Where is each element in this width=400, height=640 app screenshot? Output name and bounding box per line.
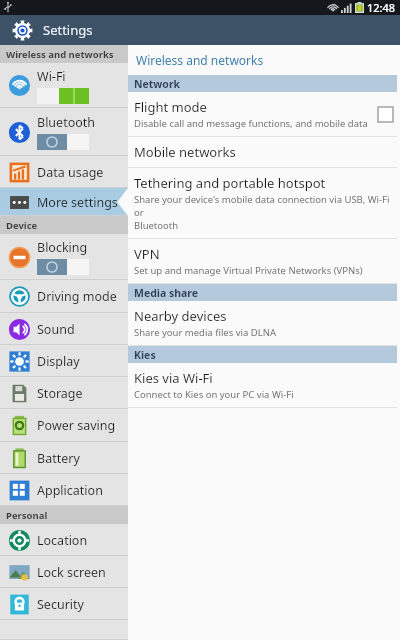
staticText: VPN — [134, 245, 160, 263]
staticText: Data usage — [37, 164, 104, 181]
staticText: Location servic — [37, 532, 124, 549]
button[interactable]: Application ma — [0, 474, 128, 506]
button[interactable]: Tethering and portable hotspot — [128, 168, 400, 239]
button[interactable]: Power saving m — [0, 409, 128, 442]
button[interactable]: Display — [0, 345, 128, 377]
staticText: Device — [6, 219, 38, 232]
staticText: Share your media files via DLNA — [134, 326, 276, 339]
button[interactable]: Location servic — [0, 524, 128, 556]
staticText: Power saving m — [37, 417, 124, 434]
button[interactable]: VPN — [128, 239, 400, 284]
staticText: More settings — [37, 194, 118, 211]
button[interactable]: Flight mode checkbox — [376, 105, 394, 123]
staticText: Kies — [134, 348, 156, 362]
button[interactable]: Bluetooth — [0, 108, 128, 156]
button[interactable]: Security — [0, 588, 128, 620]
staticText: Application ma — [37, 482, 124, 499]
button[interactable]: Storage — [0, 377, 128, 409]
button[interactable]: Driving mode — [0, 280, 128, 313]
staticText: Connect to Kies on your PC via Wi-Fi — [134, 388, 294, 401]
staticText: Kies via Wi-Fi — [134, 369, 213, 387]
button[interactable]: Flight mode — [128, 92, 400, 137]
button[interactable]: More settings — [0, 188, 128, 216]
staticText: Share your device's mobile data connecti… — [134, 193, 394, 232]
button[interactable]: Mobile networks — [128, 137, 400, 168]
staticText: Wireless and networks — [136, 52, 264, 68]
button[interactable]: Settings — [11, 19, 33, 41]
staticText: Driving mode — [37, 288, 117, 305]
button[interactable]: Sound — [0, 313, 128, 345]
button[interactable]: Kies via Wi-Fi — [128, 363, 400, 408]
button[interactable]: Battery — [0, 442, 128, 474]
staticText: Bluetooth — [37, 114, 96, 131]
staticText: Tethering and portable hotspot — [134, 174, 326, 192]
staticText: Storage — [37, 385, 83, 402]
staticText: Display — [37, 353, 80, 370]
button[interactable]: Blocking mode — [0, 234, 128, 280]
button[interactable]: Lock screen — [0, 556, 128, 588]
staticText: Media share — [134, 286, 199, 300]
button[interactable] — [0, 620, 128, 640]
staticText: Mobile networks — [134, 143, 236, 161]
staticText: 12:48 — [367, 0, 396, 15]
staticText: Network — [134, 77, 181, 91]
staticText: Disable call and message functions, and … — [134, 117, 368, 130]
staticText: Personal — [6, 509, 48, 522]
button[interactable]: Nearby devices — [128, 301, 400, 346]
staticText: Set up and manage Virtual Private Networ… — [134, 264, 363, 277]
staticText: Lock screen — [37, 564, 106, 581]
staticText: Battery — [37, 450, 80, 467]
button[interactable]: Data usage — [0, 156, 128, 188]
staticText: Sound — [37, 321, 75, 338]
staticText: Nearby devices — [134, 307, 227, 325]
staticText: Blocking mode — [37, 239, 124, 256]
staticText: Flight mode — [134, 98, 207, 116]
staticText: Wi-Fi — [37, 68, 66, 85]
staticText: Security — [37, 596, 84, 613]
staticText: Settings — [43, 21, 93, 39]
staticText: Wireless and networks — [6, 48, 114, 61]
button[interactable]: Wi-Fi — [0, 63, 128, 108]
